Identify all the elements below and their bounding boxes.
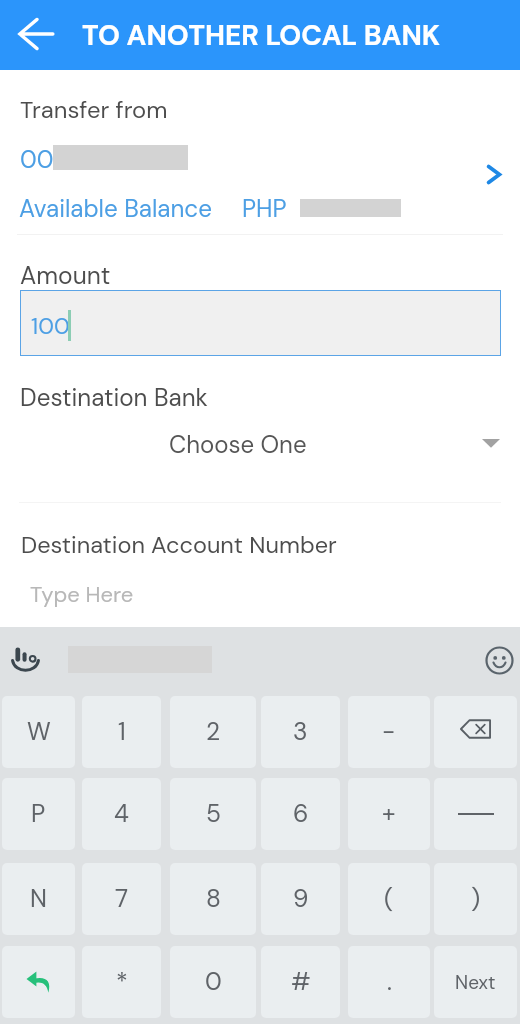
staticText: PHP [242, 193, 287, 225]
button[interactable]: P [2, 778, 75, 850]
staticText: 9 [293, 883, 309, 915]
button[interactable]: 6 [261, 778, 340, 850]
staticText: - [382, 716, 396, 748]
button[interactable]: 5 [170, 778, 256, 850]
button[interactable]: + [348, 778, 430, 850]
other: Select account [485, 164, 503, 185]
button[interactable] [0, 128, 520, 232]
staticText: Available Balance [19, 193, 212, 225]
staticText: 3 [293, 716, 308, 748]
button[interactable]: ( [348, 863, 430, 935]
staticText: 1 [118, 716, 126, 748]
button[interactable] [20, 290, 501, 356]
staticText: W [27, 716, 51, 748]
staticText: * [116, 966, 128, 998]
button[interactable]: 1 [82, 696, 161, 768]
staticText: # [291, 966, 311, 998]
button[interactable]: ) [434, 863, 517, 935]
button[interactable]: 9 [261, 863, 340, 935]
staticText: Amount [20, 260, 111, 292]
staticText: 2 [206, 716, 221, 748]
staticText: 0 [205, 966, 222, 998]
staticText: ( [384, 883, 394, 915]
staticText: 5 [206, 798, 221, 830]
staticText: TO ANOTHER LOCAL BANK [82, 17, 441, 53]
button[interactable]: W [2, 696, 75, 768]
button[interactable]: Enter [2, 946, 75, 1018]
staticText: 6 [293, 798, 309, 830]
button[interactable]: 3 [261, 696, 340, 768]
button[interactable]: Backspace [434, 696, 517, 768]
other: Open list [482, 434, 500, 452]
staticText: 4 [114, 798, 129, 830]
staticText: 7 [115, 883, 129, 915]
button[interactable]: Emoji [477, 638, 520, 682]
button[interactable] [0, 568, 520, 618]
staticText: N [30, 883, 47, 915]
button[interactable]: 7 [82, 863, 161, 935]
staticText: ) [471, 883, 481, 915]
button[interactable]: . [348, 946, 430, 1018]
button[interactable]: Space [434, 778, 517, 850]
button[interactable]: 4 [82, 778, 161, 850]
staticText: Next [455, 970, 496, 995]
staticText: Transfer from [20, 94, 168, 125]
staticText: . [387, 966, 392, 998]
button[interactable]: N [2, 863, 75, 935]
staticText: + [382, 798, 396, 830]
button[interactable]: 2 [170, 696, 256, 768]
staticText: 8 [206, 883, 221, 915]
button[interactable]: Next [434, 946, 517, 1018]
staticText: Destination Account Number [21, 530, 337, 561]
button[interactable]: * [82, 946, 161, 1018]
staticText: Destination Bank [20, 382, 208, 414]
button[interactable]: - [348, 696, 430, 768]
staticText: Type Here [30, 580, 134, 609]
button[interactable]: # [261, 946, 340, 1018]
button[interactable] [0, 418, 520, 470]
button[interactable]: Back [10, 8, 62, 60]
staticText: 100 [31, 311, 70, 341]
staticText: P [31, 798, 46, 830]
staticText: Choose One [169, 429, 307, 460]
button[interactable]: 8 [170, 863, 256, 935]
other: Enter [26, 971, 52, 993]
button[interactable]: 0 [170, 946, 256, 1018]
staticText: 00 [20, 144, 54, 176]
other: Backspace [460, 722, 491, 742]
button[interactable]: Keyboard menu [1, 636, 49, 684]
